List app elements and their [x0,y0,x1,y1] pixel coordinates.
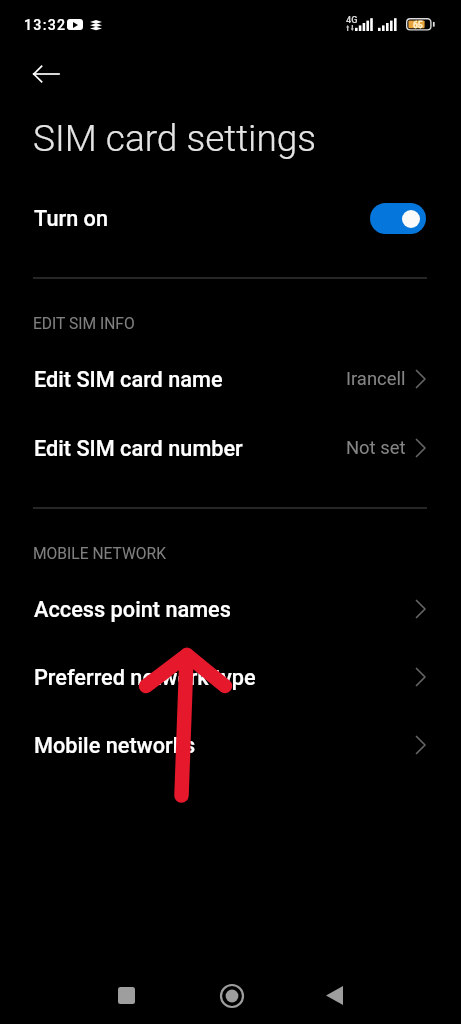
button[interactable]: Mobile networks [0,711,461,779]
staticText: Irancell [346,368,406,390]
button[interactable]: Edit SIM card number [0,414,461,482]
staticText: Not set [346,437,406,459]
button[interactable]: Recent apps [98,967,155,1024]
button[interactable]: Back [306,967,363,1024]
staticText: EDIT SIM INFO [33,315,135,333]
staticText: 65 [413,20,423,30]
button[interactable]: Edit SIM card name [0,345,461,413]
staticText: Mobile networks [34,733,196,758]
staticText: Access point names [34,597,231,622]
staticText: MOBILE NETWORK [33,545,166,563]
staticText: SIM card settings [33,117,317,160]
button[interactable]: Navigate up [26,54,66,94]
staticText: Edit SIM card name [34,367,223,392]
staticText: Preferred network type [34,665,256,690]
staticText: 4G [346,14,358,25]
staticText: Edit SIM card number [34,436,243,461]
staticText: 13:32 [24,17,67,34]
button[interactable]: Turn on [0,186,461,250]
button[interactable]: Access point names [0,575,461,643]
staticText: Turn on [34,206,109,231]
button[interactable]: Preferred network type [0,643,461,711]
button[interactable]: Home [203,967,260,1024]
